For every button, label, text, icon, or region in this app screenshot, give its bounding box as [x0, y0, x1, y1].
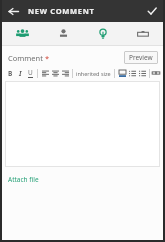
button[interactable]: Underline — [25, 67, 35, 79]
button[interactable]: Numbered list — [137, 67, 147, 79]
button[interactable]: Preview — [124, 51, 158, 64]
button[interactable]: Back — [2, 0, 24, 22]
button[interactable]: Align center — [50, 67, 60, 79]
staticText: inherited size — [76, 70, 111, 77]
button[interactable]: Align right — [60, 67, 70, 79]
staticText: Comment — [8, 53, 43, 63]
button[interactable]: Text color — [117, 67, 127, 79]
button[interactable]: Bold — [5, 67, 15, 79]
staticText: B — [8, 69, 13, 78]
button[interactable]: inherited size — [75, 70, 112, 77]
button[interactable]: Suggestions — [83, 22, 123, 45]
button[interactable]: Attach file — [8, 175, 39, 184]
button[interactable]: Assignee — [43, 22, 83, 45]
staticText: I — [19, 69, 22, 78]
button[interactable]: Align left — [40, 67, 50, 79]
button[interactable]: Cards — [123, 22, 163, 45]
button[interactable]: Italic — [15, 67, 25, 79]
button[interactable]: Bulleted list — [127, 67, 137, 79]
button[interactable]: Insert link — [152, 67, 160, 79]
staticText: Attach file — [8, 175, 39, 184]
staticText: Preview — [129, 53, 153, 62]
button[interactable]: People — [2, 22, 43, 45]
staticText: U — [28, 68, 33, 77]
staticText: NEW COMMENT — [28, 6, 95, 16]
staticText: * — [43, 53, 50, 63]
button[interactable] — [5, 81, 160, 167]
button[interactable]: Save comment — [141, 0, 163, 22]
